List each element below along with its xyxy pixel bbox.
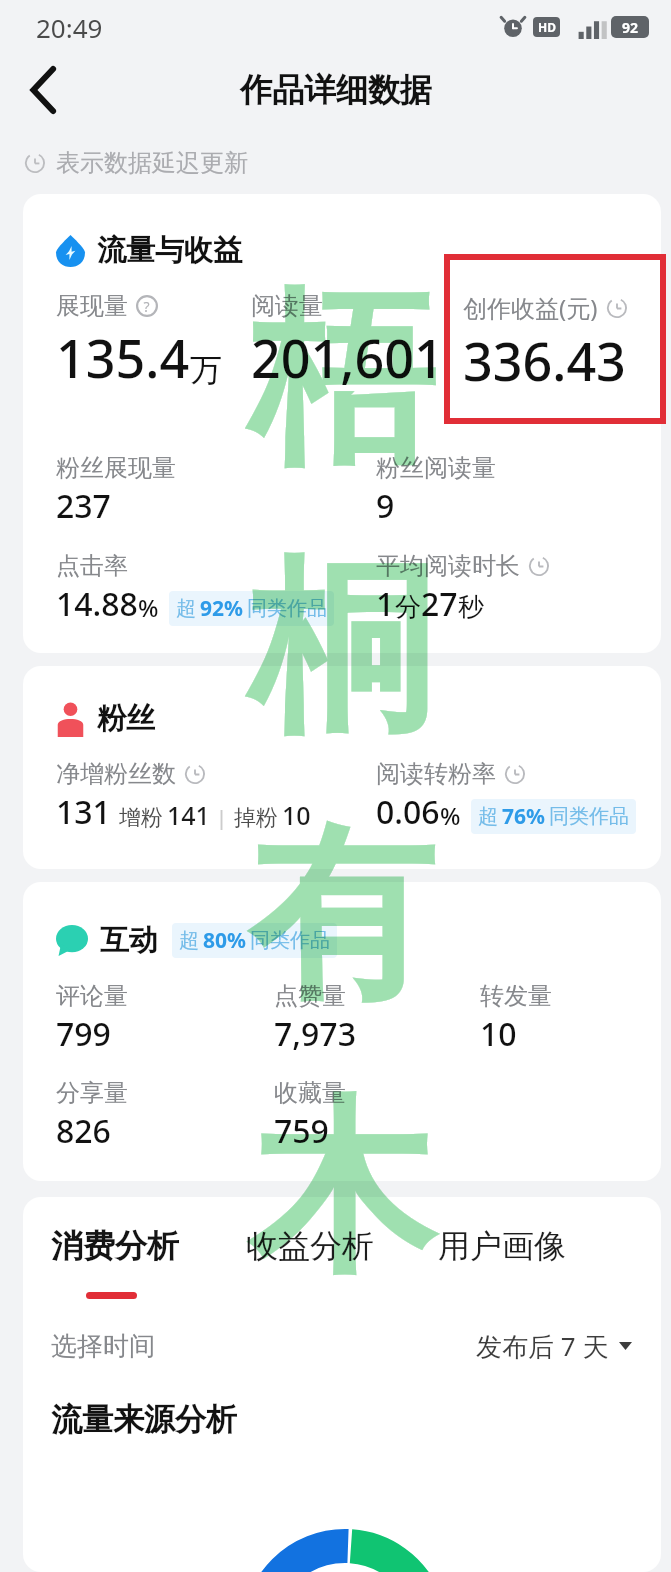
staticText: 超 (179, 928, 199, 953)
staticText: 粉丝 (97, 700, 155, 737)
staticText: 点赞量 (274, 981, 346, 1011)
button[interactable]: 收益分析 (246, 1226, 438, 1299)
staticText: 创作收益(元) (463, 291, 598, 324)
staticText: 1 (376, 582, 395, 626)
staticText: 131 (56, 790, 111, 834)
staticText: 826 (56, 1109, 111, 1153)
staticText: 336.43 (463, 325, 626, 396)
staticText: 7,973 (274, 1012, 356, 1056)
staticText: % (138, 591, 159, 624)
staticText: 27 (421, 582, 458, 626)
staticText: 201,601 (251, 322, 444, 393)
staticText: 用户画像 (438, 1226, 566, 1266)
staticText: 选择时间 (51, 1330, 155, 1363)
staticText: 互动 (100, 922, 158, 959)
staticText: 76% (502, 802, 545, 831)
staticText: 同类作品 (247, 596, 327, 621)
staticText: 流量来源分析 (51, 1400, 237, 1439)
staticText: 14.88 (56, 582, 138, 626)
staticText: 增粉 (119, 804, 163, 832)
staticText: 759 (274, 1109, 329, 1153)
staticText: 92% (200, 594, 243, 623)
staticText: 同类作品 (549, 804, 629, 829)
staticText: 万 (190, 350, 222, 390)
staticText: 阅读转粉率 (376, 759, 496, 789)
staticText: 10 (282, 798, 311, 832)
staticText: 作品详细数据 (240, 70, 432, 110)
staticText: 20:49 (36, 10, 103, 45)
staticText: 转发量 (480, 981, 552, 1011)
staticText: 0.06 (376, 790, 440, 834)
staticText: 评论量 (56, 981, 128, 1011)
staticText: 超 (176, 596, 196, 621)
staticText: 消费分析 (51, 1226, 179, 1266)
button[interactable]: 消费分析 (51, 1226, 246, 1299)
staticText: % (440, 799, 461, 832)
staticText: 237 (56, 484, 111, 528)
staticText: 粉丝展现量 (56, 453, 176, 483)
staticText: 粉丝阅读量 (376, 453, 496, 483)
staticText: 9 (376, 484, 395, 528)
staticText: HD (538, 19, 556, 35)
staticText: 分 (395, 591, 421, 624)
staticText: 秒 (458, 591, 484, 624)
button[interactable]: Back (8, 55, 78, 125)
staticText: 92 (622, 18, 639, 37)
staticText: 同类作品 (250, 928, 330, 953)
staticText: 平均阅读时长 (376, 551, 520, 581)
staticText: 发布后 7 天 (476, 1328, 609, 1364)
staticText: 阅读量 (251, 291, 323, 321)
button[interactable]: 用户画像 (438, 1226, 566, 1299)
staticText: 10 (480, 1012, 517, 1056)
staticText: 799 (56, 1012, 111, 1056)
staticText: 超 (478, 804, 498, 829)
staticText: 135.4 (56, 322, 190, 393)
staticText: | (216, 804, 228, 831)
staticText: 收益分析 (246, 1226, 374, 1266)
staticText: 流量与收益 (97, 232, 242, 269)
staticText: 表示数据延迟更新 (56, 148, 248, 178)
staticText: 收藏量 (274, 1078, 346, 1108)
staticText: 141 (167, 798, 210, 832)
staticText: 掉粉 (234, 804, 278, 832)
staticText: 展现量 (56, 291, 128, 321)
staticText: 80% (203, 926, 246, 955)
staticText: 分享量 (56, 1078, 128, 1108)
staticText: 点击率 (56, 551, 128, 581)
staticText: 净增粉丝数 (56, 759, 176, 789)
